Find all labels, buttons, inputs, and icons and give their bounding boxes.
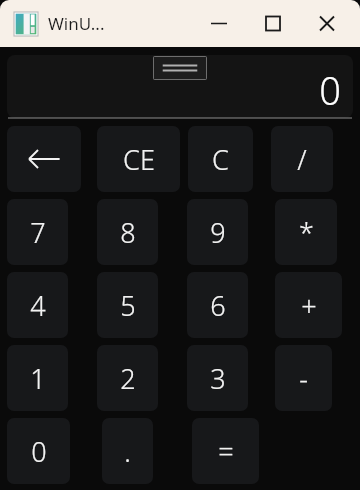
button[interactable]: . xyxy=(102,418,153,484)
button[interactable]: 6 xyxy=(187,272,248,338)
button[interactable]: Backspace xyxy=(7,126,81,192)
button[interactable]: 5 xyxy=(97,272,158,338)
button[interactable]: CE xyxy=(97,126,180,192)
button[interactable]: 2 xyxy=(97,345,158,411)
staticText: * xyxy=(299,214,314,251)
staticText: 5 xyxy=(120,287,136,324)
button[interactable]: Minimize xyxy=(192,0,246,47)
staticText: 3 xyxy=(210,360,226,397)
staticText: 0 xyxy=(31,433,47,470)
button[interactable]: 1 xyxy=(7,345,68,411)
button[interactable]: Close xyxy=(300,0,354,47)
button[interactable]: / xyxy=(271,126,333,192)
button[interactable]: 9 xyxy=(187,199,248,265)
button[interactable]: Menu xyxy=(153,56,207,80)
staticText: CE xyxy=(123,141,155,178)
staticText: C xyxy=(212,141,229,178)
button[interactable]: 8 xyxy=(97,199,158,265)
button[interactable]: - xyxy=(275,345,332,411)
button[interactable]: * xyxy=(275,199,337,265)
staticText: / xyxy=(297,141,307,178)
staticText: - xyxy=(299,360,308,397)
button[interactable]: Maximize xyxy=(246,0,300,47)
button[interactable]: 7 xyxy=(7,199,68,265)
button[interactable]: 0 xyxy=(7,418,70,484)
staticText: 8 xyxy=(120,214,136,251)
staticText: 0 xyxy=(319,64,341,116)
button[interactable]: = xyxy=(192,418,259,484)
staticText: 7 xyxy=(30,214,46,251)
staticText: + xyxy=(301,287,317,324)
button[interactable]: + xyxy=(275,272,342,338)
button[interactable]: 3 xyxy=(187,345,248,411)
button[interactable]: 4 xyxy=(7,272,68,338)
staticText: 9 xyxy=(210,214,226,251)
button[interactable]: C xyxy=(188,126,253,192)
staticText: WinU... xyxy=(48,12,105,35)
staticText: 2 xyxy=(120,360,136,397)
staticText: = xyxy=(218,433,234,470)
staticText: 4 xyxy=(30,287,46,324)
staticText: . xyxy=(124,433,131,470)
staticText: 6 xyxy=(210,287,226,324)
staticText: 1 xyxy=(30,360,46,397)
